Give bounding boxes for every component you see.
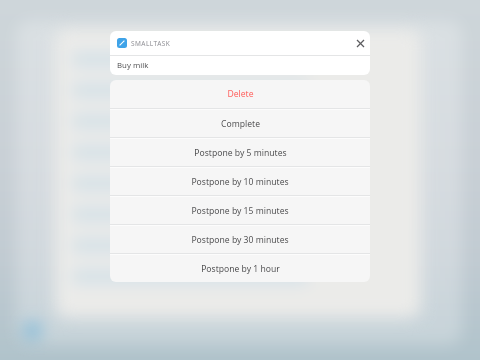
staticText: Complete [221, 118, 260, 130]
staticText: Buy milk [117, 60, 149, 71]
staticText: Postpone by 1 hour [201, 263, 280, 275]
button[interactable]: Postpone by 5 minutes [110, 139, 370, 166]
button[interactable]: Postpone by 30 minutes [110, 226, 370, 253]
button[interactable]: Postpone by 10 minutes [110, 168, 370, 195]
staticText: Postpone by 10 minutes [191, 176, 289, 188]
button[interactable]: Delete [110, 80, 370, 108]
staticText: Postpone by 15 minutes [191, 205, 289, 217]
staticText: SMALLTASK [131, 39, 171, 48]
button[interactable]: Postpone by 15 minutes [110, 197, 370, 224]
button[interactable]: Close [353, 36, 367, 50]
button[interactable]: Postpone by 1 hour [110, 255, 370, 282]
button[interactable]: Complete [110, 110, 370, 137]
staticText: Postpone by 5 minutes [194, 147, 287, 159]
staticText: Delete [227, 88, 254, 100]
staticText: Postpone by 30 minutes [191, 234, 289, 246]
